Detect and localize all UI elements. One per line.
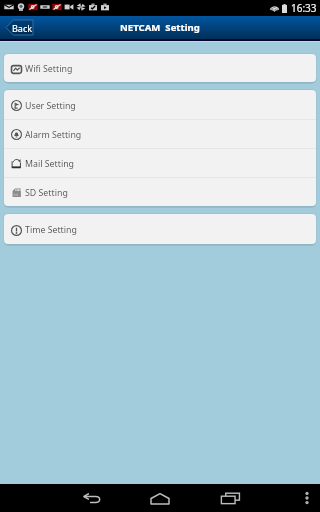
- button[interactable]: Alarm Setting: [4, 119, 316, 148]
- button[interactable]: Recents: [214, 488, 246, 508]
- button[interactable]: Back: [6, 20, 33, 35]
- button[interactable]: User Setting: [4, 90, 316, 119]
- button[interactable]: More options: [298, 488, 316, 508]
- button[interactable]: Mail Setting: [4, 148, 316, 177]
- staticText: Mail Setting: [25, 158, 74, 170]
- staticText: User Setting: [25, 100, 76, 112]
- button[interactable]: Time Setting: [4, 214, 316, 244]
- button[interactable]: Wifi Setting: [4, 54, 316, 82]
- staticText: Alarm Setting: [25, 129, 82, 141]
- staticText: Time Setting: [25, 224, 77, 236]
- button[interactable]: SD Setting: [4, 177, 316, 206]
- staticText: NETCAM Setting: [120, 21, 200, 34]
- staticText: Wifi Setting: [25, 63, 73, 75]
- button[interactable]: Home: [144, 488, 176, 508]
- staticText: 16:33: [291, 1, 317, 15]
- staticText: SD Setting: [25, 187, 68, 199]
- button[interactable]: Back: [76, 488, 108, 508]
- staticText: Back: [12, 22, 33, 34]
